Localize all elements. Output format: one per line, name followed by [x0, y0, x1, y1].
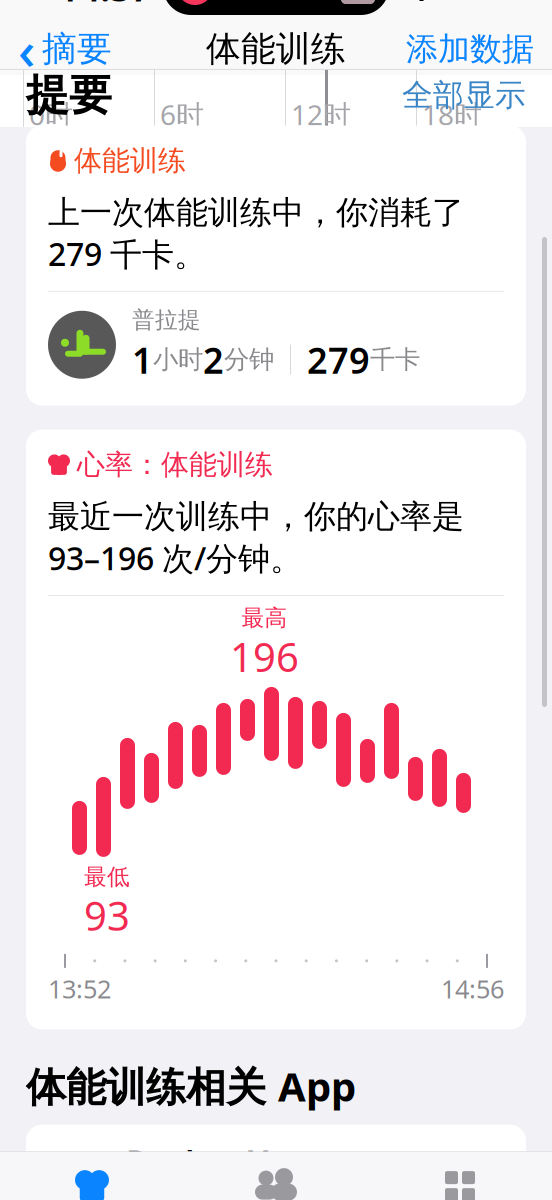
staticText: 13:52: [48, 972, 111, 1005]
staticText: 提要: [26, 69, 112, 121]
staticText: 摘要: [42, 28, 112, 70]
button[interactable]: 心率：体能训练: [26, 430, 526, 1029]
staticText: 6时: [160, 96, 204, 133]
staticText: 0时: [29, 96, 73, 133]
staticText: 普拉提: [132, 306, 201, 334]
staticText: 分钟: [224, 344, 274, 375]
staticText: 最高: [241, 604, 287, 632]
button[interactable]: 体能训练: [26, 125, 526, 405]
staticText: 心率：体能训练: [77, 448, 273, 482]
staticText: 上一次体能训练中，你消耗了 279 千卡。: [48, 190, 464, 275]
button[interactable]: ‹: [0, 23, 122, 75]
staticText: 最近一次训练中，你的心率是 93–196 次/分钟。: [48, 494, 464, 579]
staticText: 1: [132, 336, 153, 384]
staticText: 279: [307, 336, 370, 384]
staticText: ‹: [18, 14, 35, 84]
staticText: 体能训练: [206, 28, 346, 70]
staticText: Pocket Yoga: [126, 1141, 328, 1185]
button[interactable]: 摘要: [0, 1171, 184, 1200]
button[interactable]: 共享: [184, 1171, 368, 1200]
staticText: 全部显示: [402, 76, 526, 114]
button[interactable]: Pocket Yoga: [26, 1125, 526, 1200]
staticText: 14:57: [58, 0, 152, 12]
staticText: 14:56: [441, 972, 504, 1005]
staticText: 千卡: [370, 344, 420, 375]
staticText: Rainfrog, LLC: [126, 1188, 309, 1200]
button[interactable]: 添加数据: [388, 23, 552, 75]
staticText: 18时: [422, 96, 482, 133]
staticText: 2: [203, 336, 224, 384]
staticText: 小时: [153, 344, 203, 375]
staticText: 体能训练相关 App: [26, 1059, 356, 1113]
staticText: 12时: [291, 96, 351, 133]
button[interactable]: 全部显示: [390, 70, 526, 120]
staticText: 添加数据: [406, 29, 534, 69]
staticText: 196: [230, 630, 299, 683]
button[interactable]: 浏览: [368, 1171, 552, 1200]
staticText: 最低: [84, 863, 130, 891]
staticText: 93: [84, 889, 130, 942]
staticText: 体能训练: [74, 143, 186, 178]
